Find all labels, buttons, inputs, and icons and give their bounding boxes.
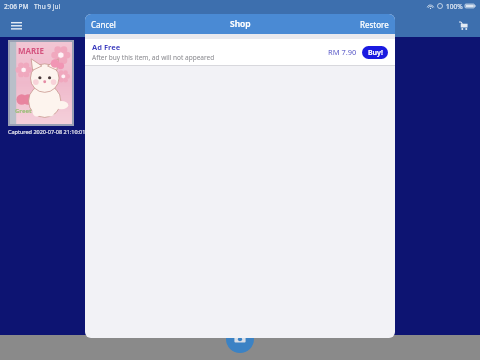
staticText: After buy this item, ad will not appeare… (92, 53, 215, 62)
staticText: RM 7.90 (328, 47, 357, 57)
button[interactable]: Take photo (226, 325, 254, 353)
staticText: Buy! (368, 48, 383, 58)
staticText: 100% (446, 2, 463, 11)
button[interactable]: Cancel (91, 19, 116, 30)
button[interactable]: Ad Free (85, 39, 395, 65)
staticText: Thu 9 Jul (34, 2, 61, 11)
staticText: Ad Free (92, 42, 121, 52)
staticText: MARIE (18, 45, 44, 56)
staticText: Cancel (91, 19, 116, 30)
staticText: Shop (230, 18, 251, 30)
button[interactable]: Buy! (362, 46, 388, 59)
staticText: Restore (360, 19, 389, 30)
button[interactable]: Photo Marie (10, 42, 72, 124)
button[interactable]: Restore (360, 19, 389, 30)
staticText: Captured 2020-07-08 21:10:01 (8, 128, 86, 135)
button[interactable]: Cart (454, 15, 474, 35)
button[interactable]: Menu (6, 15, 26, 35)
staticText: 2:06 PM (4, 2, 29, 11)
staticText: Greet (15, 107, 32, 115)
